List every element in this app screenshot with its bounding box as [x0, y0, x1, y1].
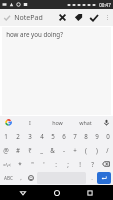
button[interactable]: ' [38, 157, 50, 171]
button[interactable]: 5 [47, 129, 58, 143]
button[interactable]: 8 [80, 129, 91, 143]
button[interactable]: ; [62, 157, 74, 171]
button[interactable]: " [26, 157, 38, 171]
button[interactable]: how are you doing? [2, 27, 111, 115]
staticText: ' [43, 160, 45, 168]
staticText: ! [79, 160, 81, 168]
staticText: NotePad [14, 13, 43, 23]
staticText: _ [40, 146, 43, 154]
button[interactable]: @ [0, 143, 12, 157]
staticText: ) [96, 146, 98, 154]
staticText: how are you doing? [6, 30, 63, 38]
staticText: : [55, 160, 57, 168]
staticText: 5 [51, 132, 55, 140]
button[interactable]: 2 [12, 129, 24, 143]
button[interactable]: Google [0, 116, 16, 129]
button[interactable]: ? [86, 157, 98, 171]
staticText: 2 [16, 132, 20, 140]
button[interactable]: : [50, 157, 62, 171]
staticText: 1 [4, 132, 8, 140]
staticText: * [18, 160, 22, 168]
button[interactable]: 1 [0, 129, 12, 143]
button[interactable]: Discard [54, 9, 70, 26]
staticText: 00:47 [99, 2, 111, 8]
button[interactable]: 6 [58, 129, 69, 143]
button[interactable]: . [87, 172, 96, 184]
staticText: 0 [106, 132, 110, 140]
staticText: ( [85, 146, 87, 154]
staticText: 6 [62, 132, 66, 140]
button[interactable]: - [58, 143, 69, 157]
button[interactable]: / [102, 143, 113, 157]
button[interactable]: & [47, 143, 58, 157]
button[interactable]: ₹ [24, 143, 36, 157]
button[interactable]: Recents [79, 185, 101, 200]
button[interactable]: Emoji [25, 172, 36, 184]
button[interactable]: 9 [91, 129, 102, 143]
staticText: + [73, 146, 77, 154]
staticText: 4 [40, 132, 44, 140]
button[interactable]: 3 [24, 129, 36, 143]
button[interactable]: More symbols [0, 157, 14, 171]
button[interactable]: what [71, 116, 99, 129]
button[interactable]: Back [12, 185, 34, 200]
button[interactable]: how [43, 116, 71, 129]
button[interactable]: ! [74, 157, 86, 171]
staticText: how [52, 119, 63, 126]
staticText: 8 [84, 132, 88, 140]
button[interactable]: Save [86, 9, 102, 26]
staticText: ? [91, 160, 94, 168]
staticText: / [106, 146, 109, 154]
staticText: =\< [3, 161, 11, 168]
button[interactable]: Label [70, 9, 86, 26]
button[interactable]: _ [36, 143, 47, 157]
staticText: ABC [4, 175, 13, 181]
button[interactable]: I [16, 116, 43, 129]
staticText: . [91, 174, 93, 182]
button[interactable]: + [69, 143, 80, 157]
button[interactable]: Up [0, 9, 14, 26]
staticText: 9 [95, 132, 99, 140]
staticText: ₹ [28, 146, 32, 154]
staticText: I [29, 119, 31, 126]
staticText: 3 [28, 132, 32, 140]
staticText: - [63, 146, 65, 154]
button[interactable]: ABC [1, 172, 16, 184]
staticText: 7 [73, 132, 77, 140]
button[interactable]: Home [46, 185, 68, 200]
button[interactable]: * [14, 157, 26, 171]
staticText: # [16, 146, 20, 154]
button[interactable]: ( [80, 143, 91, 157]
staticText: & [50, 146, 55, 154]
staticText: ; [67, 160, 69, 168]
button[interactable]: # [12, 143, 24, 157]
staticText: @ [3, 146, 9, 154]
button[interactable]: 4 [36, 129, 47, 143]
button[interactable]: , [16, 172, 25, 184]
button[interactable]: Enter [97, 172, 111, 184]
button[interactable]: 7 [69, 129, 80, 143]
staticText: " [31, 160, 34, 168]
button[interactable]: 0 [102, 129, 113, 143]
button[interactable]: Backspace [98, 157, 113, 171]
staticText: , [20, 174, 22, 182]
button[interactable]: ) [91, 143, 102, 157]
staticText: what [79, 119, 92, 126]
button[interactable]: More options [102, 9, 113, 26]
button[interactable]: Voice input [99, 116, 113, 129]
